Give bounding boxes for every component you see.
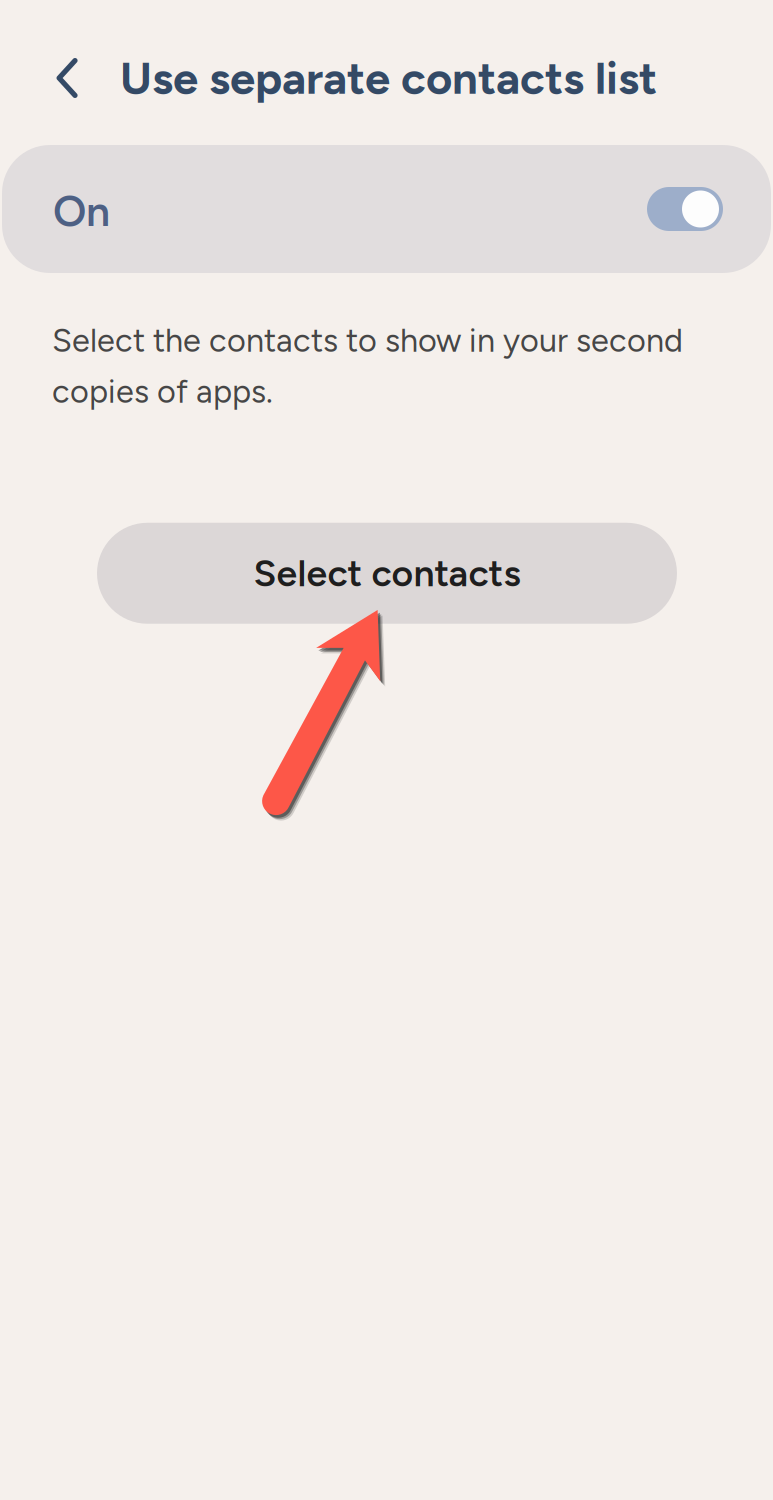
staticText: Use separate contacts list xyxy=(120,51,657,105)
button[interactable]: Select contacts xyxy=(97,523,677,624)
button[interactable]: Back xyxy=(45,50,89,106)
button[interactable]: On xyxy=(2,145,771,273)
staticText: On xyxy=(53,185,110,237)
staticText: Select contacts xyxy=(253,551,520,596)
staticText: Select the contacts to show in your seco… xyxy=(52,321,683,411)
